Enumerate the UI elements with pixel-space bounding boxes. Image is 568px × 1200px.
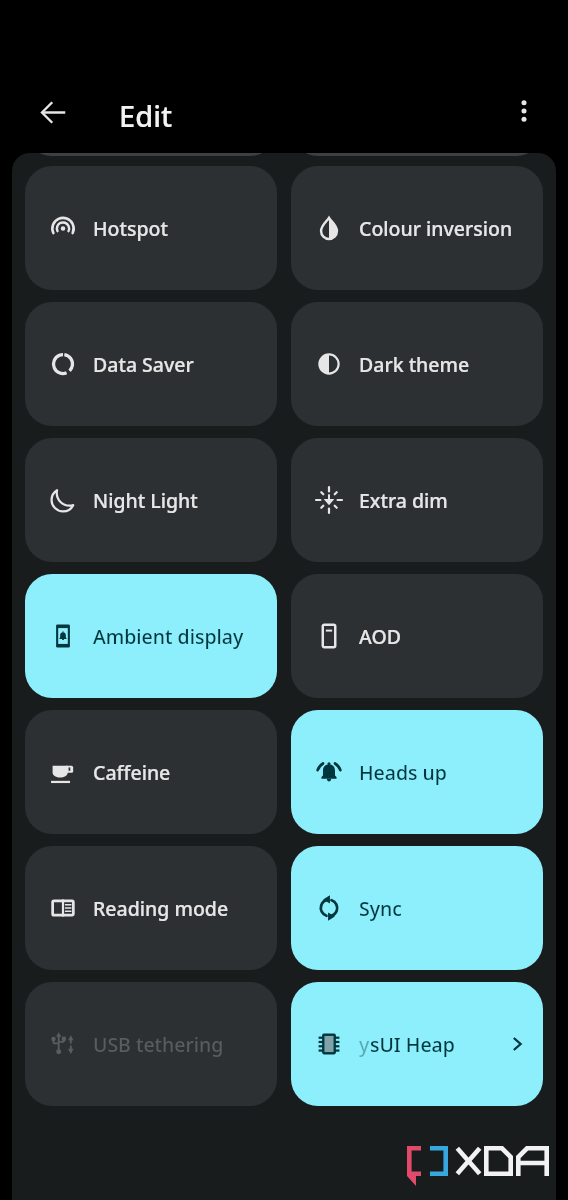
button[interactable]: Back (25, 84, 81, 140)
button[interactable]: Data Saver (25, 302, 277, 426)
button[interactable]: Heads up (291, 710, 543, 834)
button[interactable]: y (291, 982, 543, 1106)
button[interactable]: Hotspot (25, 166, 277, 290)
button[interactable]: More options (496, 83, 552, 139)
staticText: Reading mode (93, 895, 229, 922)
button[interactable]: Night Light (25, 438, 277, 562)
staticText: Night Light (93, 487, 198, 514)
button[interactable]: Colour inversion (291, 166, 543, 290)
button[interactable]: Dark theme (291, 302, 543, 426)
staticText: sUI Heap (370, 1031, 455, 1058)
staticText: y (359, 1031, 370, 1058)
button[interactable]: Extra dim (291, 438, 543, 562)
staticText: Heads up (359, 759, 447, 786)
staticText: AOD (359, 623, 401, 650)
staticText: Extra dim (359, 487, 448, 514)
button[interactable]: USB tethering (25, 982, 277, 1106)
staticText: Data Saver (93, 351, 194, 378)
staticText: Caffeine (93, 759, 171, 786)
button[interactable]: AOD (291, 574, 543, 698)
staticText: Colour inversion (359, 215, 513, 242)
button[interactable]: Ambient display (25, 574, 277, 698)
staticText: Sync (359, 895, 402, 922)
staticText: Dark theme (359, 351, 470, 378)
staticText: Edit (119, 96, 173, 135)
button[interactable]: Caffeine (25, 710, 277, 834)
staticText: USB tethering (93, 1031, 224, 1058)
staticText: Ambient display (93, 623, 244, 650)
staticText: Hotspot (93, 215, 168, 242)
button[interactable]: Sync (291, 846, 543, 970)
button[interactable]: Reading mode (25, 846, 277, 970)
